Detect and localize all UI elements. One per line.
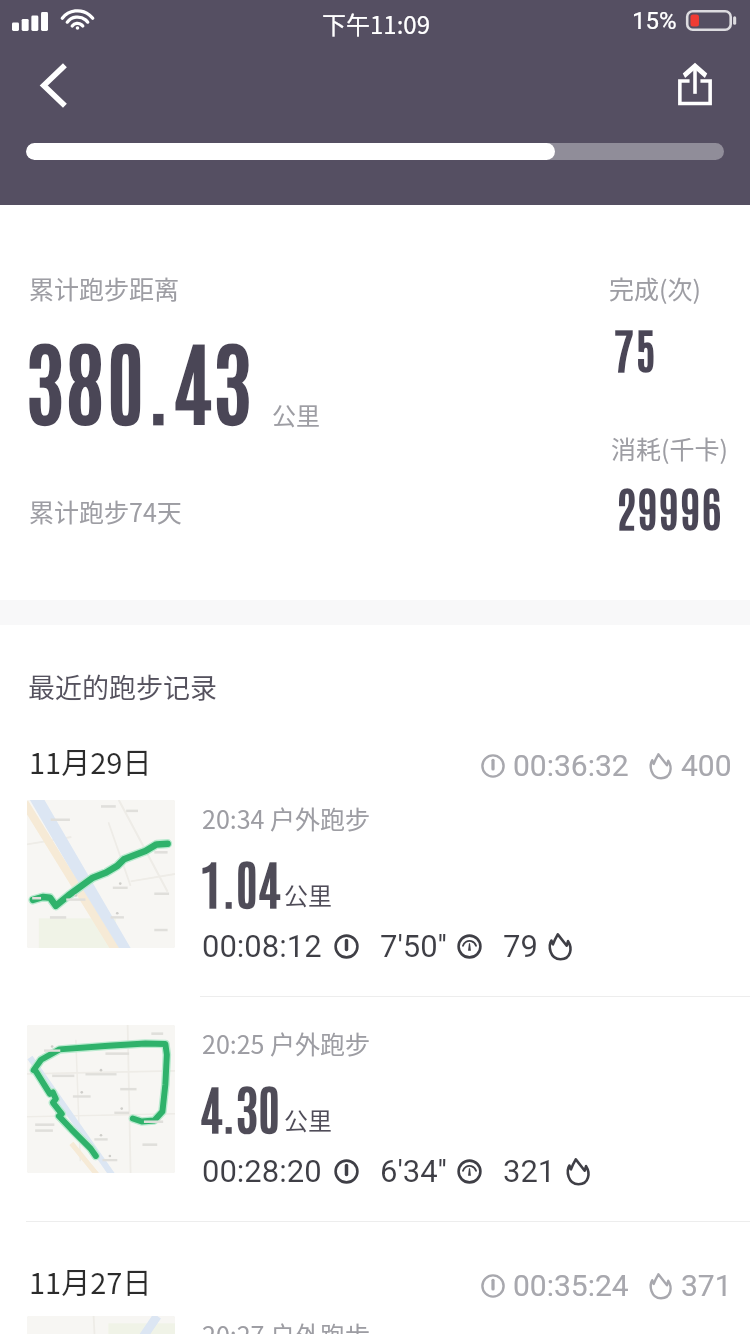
- staticText: 公里: [284, 877, 332, 912]
- staticText: 下午11:09: [322, 6, 430, 41]
- staticText: 00:08:12: [202, 928, 322, 964]
- staticText: 11月29日: [29, 740, 152, 782]
- staticText: 累计跑步74天: [29, 493, 182, 529]
- staticText: 11月27日: [29, 1260, 152, 1302]
- staticText: 00:35:24: [513, 1268, 629, 1303]
- staticText: 400: [681, 748, 732, 783]
- staticText: 29996: [616, 476, 723, 537]
- staticText: 371: [681, 1268, 732, 1303]
- staticText: 75: [614, 318, 657, 379]
- button[interactable]: Back: [20, 52, 86, 118]
- staticText: 累计跑步距离: [29, 270, 180, 306]
- staticText: 00:28:20: [202, 1153, 322, 1189]
- button[interactable]: 20:25 户外跑步: [0, 1022, 750, 1222]
- staticText: 00:36:32: [513, 748, 629, 783]
- staticText: 6'34'': [380, 1153, 447, 1189]
- staticText: 完成(次): [609, 270, 701, 306]
- button[interactable]: Share: [662, 50, 728, 116]
- staticText: 20:27 户外跑步: [202, 1316, 371, 1334]
- button[interactable]: 11月29日: [0, 745, 750, 789]
- staticText: 79: [503, 928, 538, 964]
- staticText: 15%: [632, 7, 677, 35]
- staticText: 1.04: [200, 847, 281, 916]
- staticText: 消耗(千卡): [611, 430, 728, 466]
- staticText: 4.30: [200, 1072, 281, 1141]
- button[interactable]: 20:27 户外跑步: [0, 1313, 750, 1334]
- staticText: 公里: [272, 397, 320, 432]
- button[interactable]: 20:34 户外跑步: [0, 797, 750, 997]
- staticText: 380.43: [26, 320, 254, 436]
- staticText: 最近的跑步记录: [28, 667, 217, 706]
- staticText: 公里: [284, 1102, 332, 1137]
- staticText: 20:25 户外跑步: [202, 1025, 371, 1061]
- staticText: 20:34 户外跑步: [202, 800, 371, 836]
- staticText: 321: [503, 1153, 556, 1189]
- staticText: 7'50'': [380, 928, 447, 964]
- button[interactable]: 11月27日: [0, 1265, 750, 1309]
